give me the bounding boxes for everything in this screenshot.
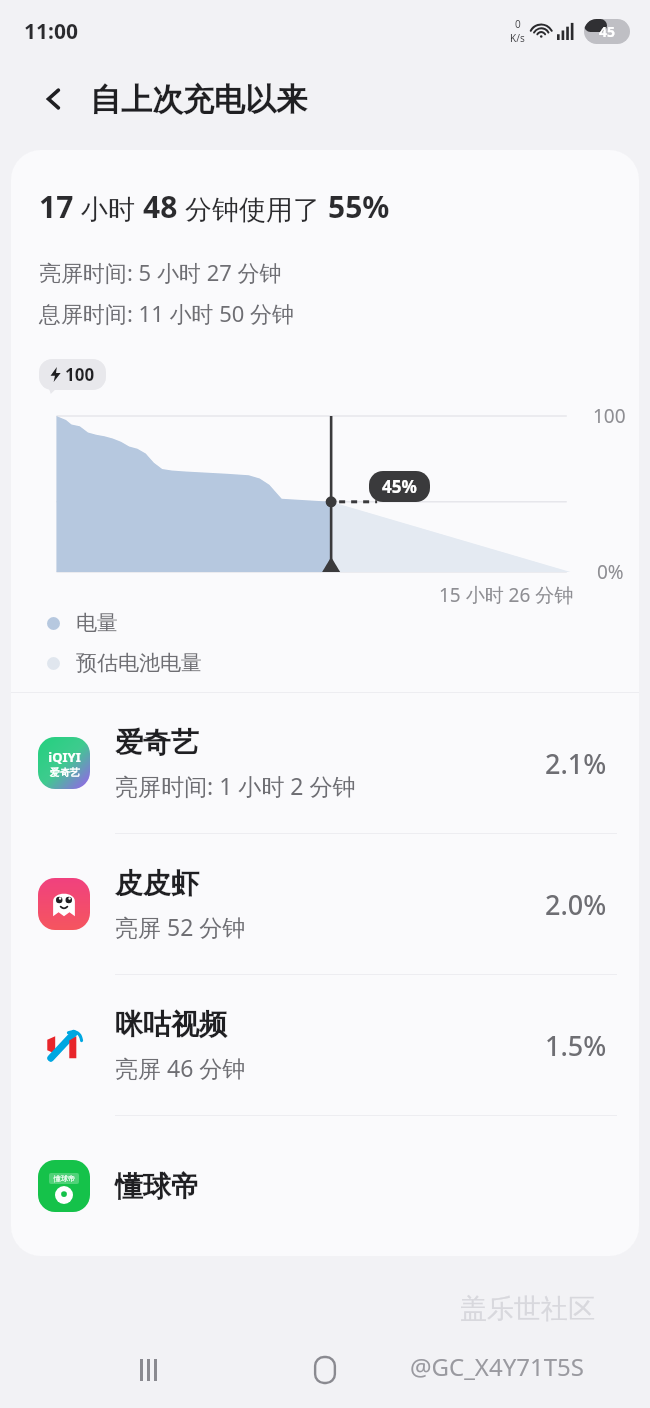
staticText: 咪咕视频 [115,1007,227,1042]
staticText: 电量 [76,610,118,636]
staticText: 爱奇艺 [50,766,80,779]
button[interactable]: 咪咕视频 [11,975,639,1115]
staticText: 亮屏 52 分钟 [115,911,246,942]
staticText: 45% [382,475,417,498]
staticText: 皮皮虾 [115,866,199,901]
staticText: 懂球帝 [54,1174,75,1183]
staticText: 11:00 [24,17,78,46]
staticText: 懂球帝 [115,1169,199,1204]
button[interactable]: 皮皮虾 [11,834,639,974]
staticText: 亮屏时间: 5 小时 27 分钟 [39,257,282,287]
staticText: 小时 [74,190,143,227]
staticText: @GC_X4Y71T5S [410,1350,584,1383]
staticText: 亮屏时间: 1 小时 2 分钟 [115,770,356,801]
staticText: 100 [65,363,95,386]
staticText: iQIYI [48,748,81,766]
button[interactable]: Home [295,1340,355,1400]
staticText: 息屏时间: 11 小时 50 分钟 [39,298,295,328]
staticText: 17 [39,186,74,227]
staticText: K/s [510,31,525,45]
staticText: 1.5% [545,1027,607,1064]
button[interactable]: Recent apps [118,1340,178,1400]
staticText: 预估电池电量 [76,650,202,676]
staticText: 0 [515,17,521,31]
staticText: 爱奇艺 [115,725,199,760]
staticText: 48 [143,186,178,227]
staticText: 0% [597,559,624,585]
staticText: 2.0% [545,886,607,923]
staticText: 15 小时 26 分钟 [439,582,574,608]
staticText: 2.1% [545,745,607,782]
staticText: 自上次充电以来 [90,80,307,119]
staticText: 分钟使用了 [178,190,328,227]
button[interactable]: 懂球帝 [11,1116,639,1256]
staticText: 亮屏 46 分钟 [115,1052,246,1083]
button[interactable]: Back [32,77,76,121]
staticText: 55% [328,186,390,227]
staticText: 45 [599,22,616,41]
staticText: 盖乐世社区 [460,1292,595,1326]
staticText: 100 [593,403,626,429]
button[interactable]: iQIYI [11,693,639,833]
